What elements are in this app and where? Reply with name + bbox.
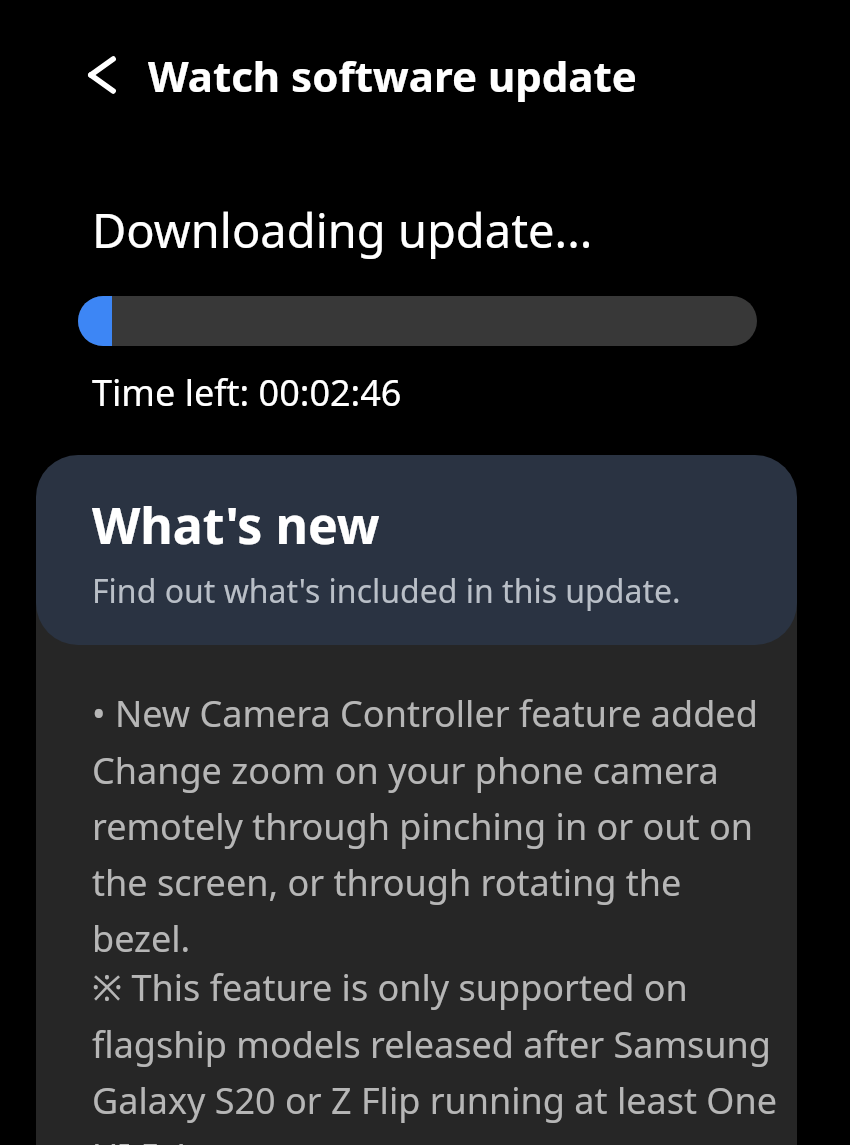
staticText: Downloading update...: [92, 198, 593, 262]
staticText: • New Camera Controller feature added Ch…: [92, 689, 777, 963]
button[interactable]: What's new: [36, 455, 797, 645]
staticText: What's new: [92, 491, 380, 559]
button[interactable]: Back: [70, 43, 134, 107]
staticText: Time left: 00:02:46: [92, 368, 402, 417]
staticText: Watch software update: [148, 47, 637, 104]
staticText: Find out what's included in this update.: [92, 569, 681, 613]
staticText: ※ This feature is only supported on flag…: [92, 963, 777, 1145]
